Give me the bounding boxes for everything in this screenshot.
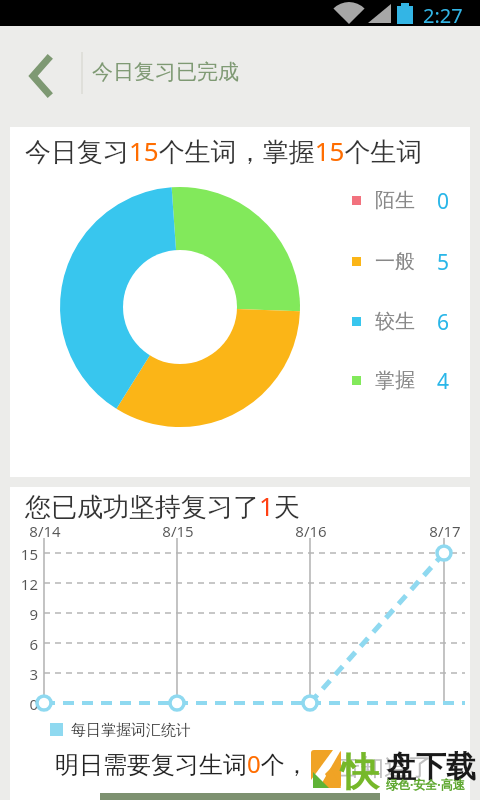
button[interactable]: 明日需要复习生词0个， bbox=[10, 742, 470, 782]
staticText: 点击知道了 bbox=[312, 752, 432, 782]
staticText: 8/15 bbox=[160, 521, 196, 541]
staticText: 12 bbox=[14, 574, 38, 594]
staticText: 明日需要复习生词0个， bbox=[55, 747, 309, 780]
staticText: 陌生 bbox=[375, 188, 415, 213]
staticText: 快 bbox=[341, 748, 379, 796]
staticText: 8/16 bbox=[293, 521, 329, 541]
staticText: 4 bbox=[431, 367, 455, 396]
staticText: 绿色·安全·高速 bbox=[386, 776, 465, 792]
button[interactable] bbox=[10, 36, 80, 116]
staticText: 8/14 bbox=[27, 521, 63, 541]
staticText: 每日掌握词汇统计 bbox=[71, 721, 191, 738]
staticText: 6 bbox=[14, 634, 38, 654]
staticText: 0 bbox=[431, 187, 455, 216]
staticText: 5 bbox=[431, 248, 455, 277]
staticText: 一般 bbox=[375, 249, 415, 274]
staticText: 3 bbox=[14, 664, 38, 684]
staticText: 9 bbox=[14, 604, 38, 624]
staticText: 2:27 bbox=[423, 2, 463, 28]
staticText: 较生 bbox=[375, 309, 415, 334]
staticText: 掌握 bbox=[375, 368, 415, 393]
staticText: 8/17 bbox=[427, 521, 463, 541]
staticText: 6 bbox=[431, 308, 455, 337]
staticText: 15 bbox=[14, 544, 38, 564]
staticText: 您已成功坚持复习了1天 bbox=[25, 488, 300, 524]
staticText: 今日复习15个生词，掌握15个生词 bbox=[25, 133, 423, 169]
staticText: 0 bbox=[14, 694, 38, 714]
staticText: 今日复习已完成 bbox=[92, 59, 239, 85]
staticText: 盘下载 bbox=[386, 748, 476, 786]
